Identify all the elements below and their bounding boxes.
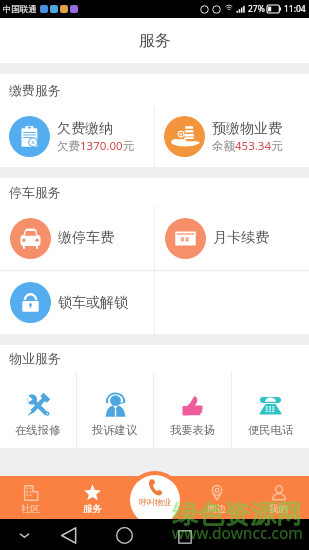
button[interactable]: 月卡续费 — [155, 206, 309, 270]
staticText: 社区 — [21, 503, 40, 515]
staticText: 呼叫物业 — [139, 497, 171, 507]
staticText: 欠费1370.00元 — [57, 138, 135, 154]
staticText: 欠费缴纳 — [57, 120, 113, 138]
button[interactable]: 锁车或解锁 — [0, 271, 154, 334]
button[interactable]: 便民电话 — [232, 371, 309, 448]
staticText: 月卡续费 — [213, 229, 269, 247]
staticText: 在线报修 — [15, 423, 61, 437]
button[interactable]: Recents — [175, 527, 194, 546]
staticText: 周边 — [207, 503, 226, 515]
button[interactable]: 社区 — [0, 476, 61, 519]
staticText: 中国联通 — [3, 4, 37, 15]
button[interactable]: 服务 — [61, 476, 123, 519]
staticText: 缴费服务 — [9, 82, 61, 98]
button[interactable]: 呼叫物业 — [126, 471, 184, 529]
staticText: 我的 — [269, 503, 288, 515]
button[interactable]: 在线报修 — [0, 371, 76, 448]
button[interactable]: 我的 — [247, 476, 309, 519]
staticText: 停车服务 — [9, 184, 61, 200]
staticText: 锁车或解锁 — [58, 294, 128, 312]
staticText: 便民电话 — [248, 423, 294, 437]
button[interactable]: 欠费缴纳 — [0, 106, 154, 167]
button[interactable]: 预缴物业费 — [155, 106, 309, 167]
staticText: 27% — [248, 3, 265, 15]
staticText: 服务 — [83, 503, 102, 515]
button[interactable]: Back — [58, 525, 79, 546]
button[interactable]: Home — [114, 525, 135, 546]
staticText: 绿色资源网 — [172, 498, 302, 531]
button[interactable]: 我要表扬 — [154, 371, 231, 448]
staticText: 服务 — [139, 31, 171, 51]
button[interactable]: 周边 — [185, 476, 247, 519]
staticText: 我要表扬 — [170, 423, 216, 437]
staticText: 缴停车费 — [58, 229, 114, 247]
staticText: 投诉建议 — [92, 423, 138, 437]
staticText: 物业服务 — [9, 350, 61, 366]
staticText: www.downcc.com — [172, 522, 303, 543]
staticText: 预缴物业费 — [212, 120, 282, 138]
staticText: 余额453.34元 — [212, 138, 283, 154]
staticText: 11:04 — [284, 3, 306, 15]
button[interactable]: 投诉建议 — [77, 371, 153, 448]
button[interactable]: 缴停车费 — [0, 206, 154, 270]
button[interactable]: Hide — [16, 527, 33, 544]
